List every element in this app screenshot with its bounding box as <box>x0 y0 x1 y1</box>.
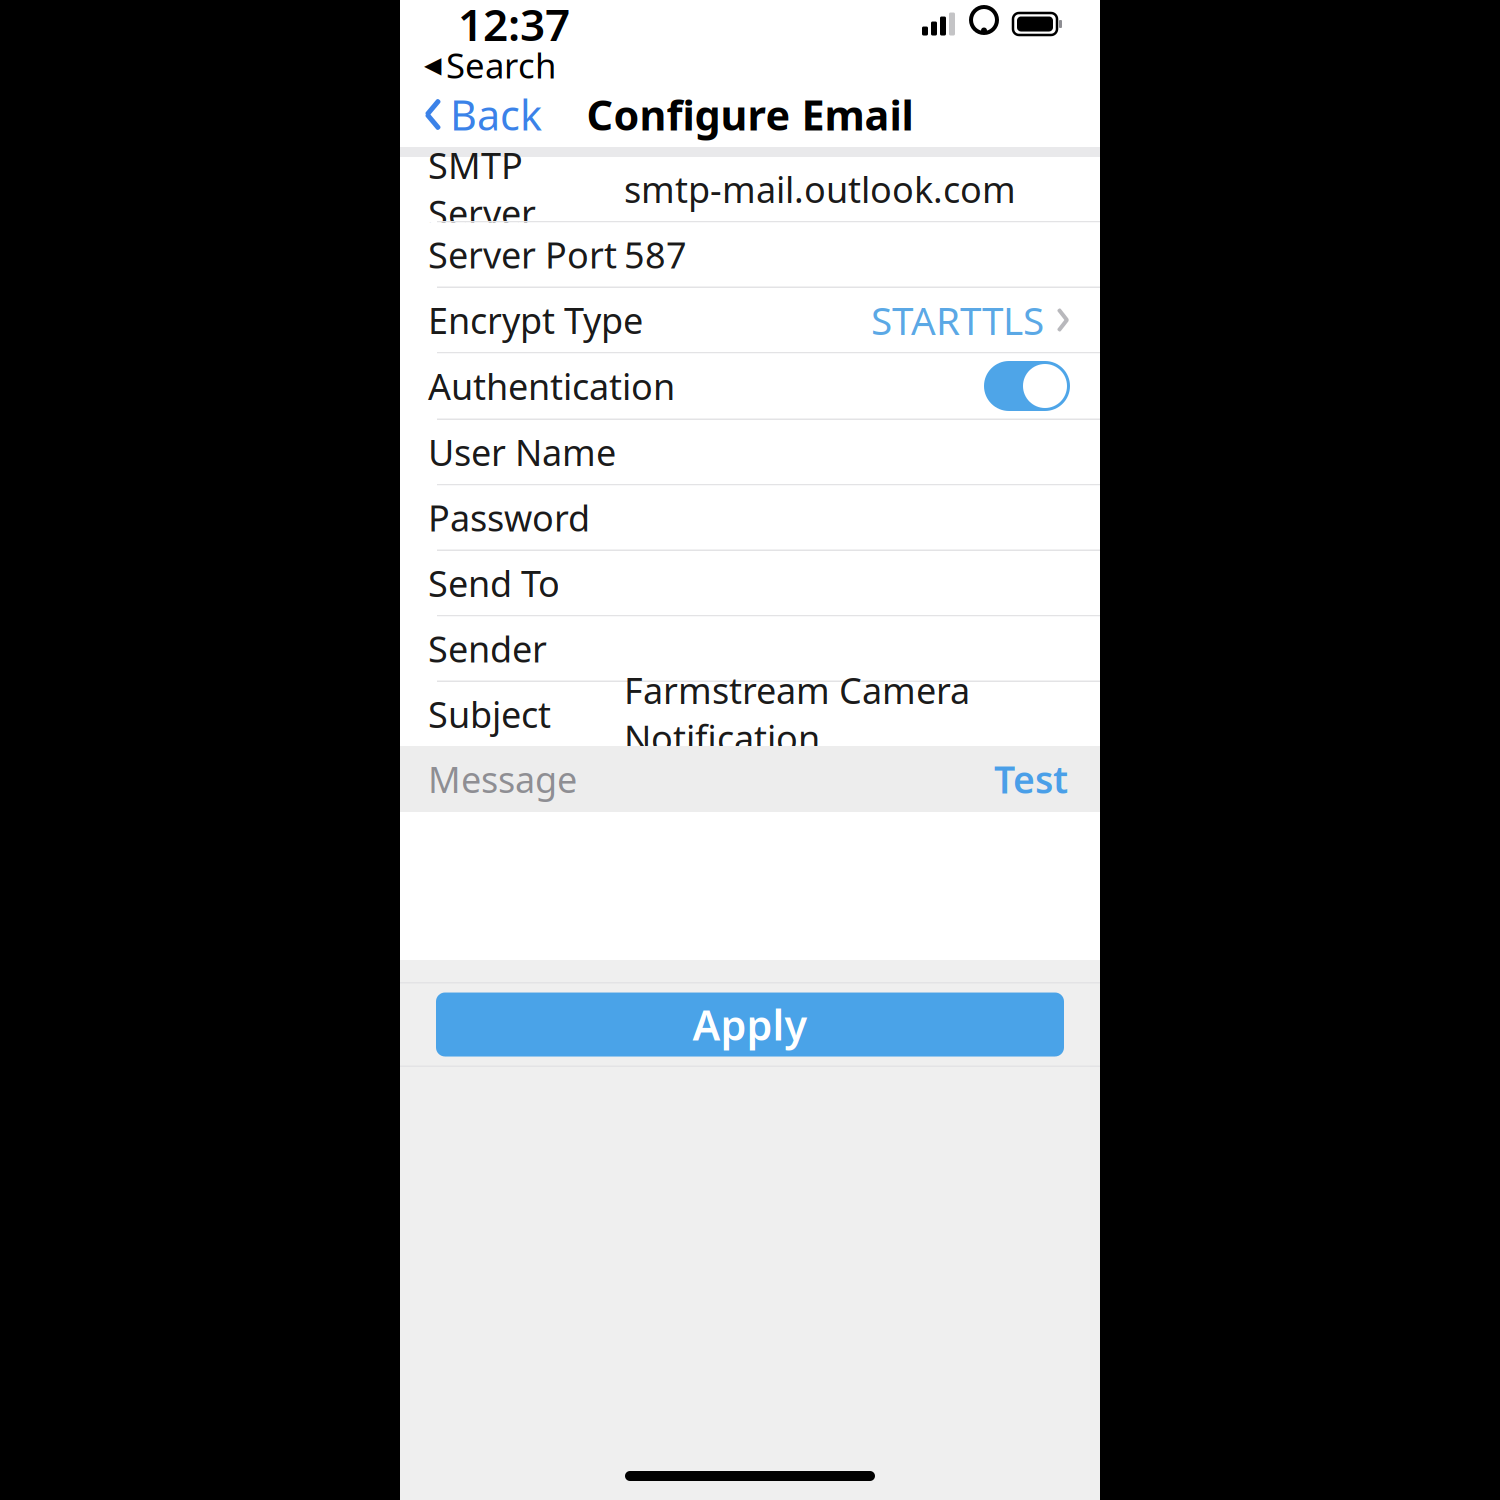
button[interactable]: Encrypt Type <box>400 288 1100 352</box>
button[interactable]: Password <box>400 485 1100 549</box>
staticText: Back <box>450 87 542 142</box>
staticText: Test <box>994 754 1068 804</box>
staticText: Send To <box>428 559 560 607</box>
button[interactable]: SMTP Server <box>400 157 1100 221</box>
staticText: Configure Email <box>586 87 913 142</box>
staticText: 12:37 <box>458 0 570 53</box>
button[interactable]: ◀ <box>400 42 556 88</box>
staticText: Password <box>428 494 590 541</box>
button[interactable]: User Name <box>400 420 1100 484</box>
button[interactable]: Apply <box>400 983 1100 1065</box>
staticText: smtp-mail.outlook.com <box>624 165 1016 213</box>
staticText: Authentication <box>428 362 675 410</box>
staticText: Server Port <box>428 231 617 278</box>
staticText: Message <box>428 755 577 803</box>
staticText: Search <box>446 42 556 88</box>
staticText: Sender <box>428 625 547 672</box>
staticText: Apply <box>692 997 807 1052</box>
staticText: Encrypt Type <box>428 296 643 344</box>
button[interactable]: Sender <box>400 616 1100 680</box>
staticText: Farmstream Camera Notification <box>624 666 970 762</box>
button[interactable]: Authentication <box>400 353 1100 418</box>
button[interactable]: Message <box>400 746 1100 812</box>
staticText: User Name <box>428 428 616 476</box>
button[interactable]: Server Port <box>400 222 1100 286</box>
button[interactable]: Subject <box>400 682 1100 746</box>
staticText: Subject <box>428 690 551 738</box>
staticText: SMTP Server <box>428 141 536 237</box>
staticText: ◀ <box>424 52 441 78</box>
staticText: 587 <box>624 231 687 278</box>
staticText: STARTTLS <box>871 294 1044 346</box>
button[interactable]: Send To <box>400 551 1100 615</box>
button[interactable]: Back <box>400 77 542 152</box>
